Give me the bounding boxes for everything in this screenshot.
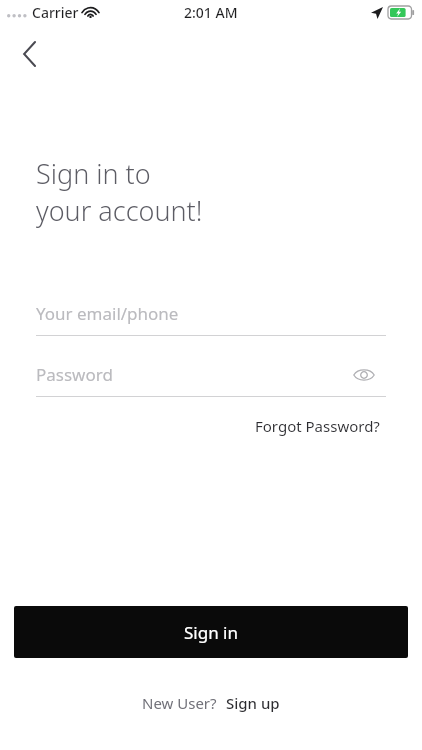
button[interactable]: Show password xyxy=(344,355,384,395)
button[interactable]: Back xyxy=(8,32,52,76)
staticText: Forgot Password? xyxy=(255,416,380,436)
staticText: New User? xyxy=(142,693,217,713)
button[interactable]: Sign up xyxy=(226,693,280,713)
button[interactable]: Sign in xyxy=(14,606,408,658)
staticText: Your email/phone xyxy=(36,302,179,325)
button[interactable]: Forgot Password? xyxy=(255,412,380,440)
button[interactable]: Your email/phone xyxy=(36,296,386,336)
staticText: Sign up xyxy=(226,693,280,713)
staticText: Carrier xyxy=(32,3,79,22)
staticText: your account! xyxy=(36,192,203,229)
button[interactable]: Password xyxy=(36,357,386,397)
staticText: Sign in to xyxy=(36,155,151,192)
staticText: 2:01 AM xyxy=(184,3,238,22)
staticText: Password xyxy=(36,363,113,386)
staticText: Sign in xyxy=(184,621,238,644)
